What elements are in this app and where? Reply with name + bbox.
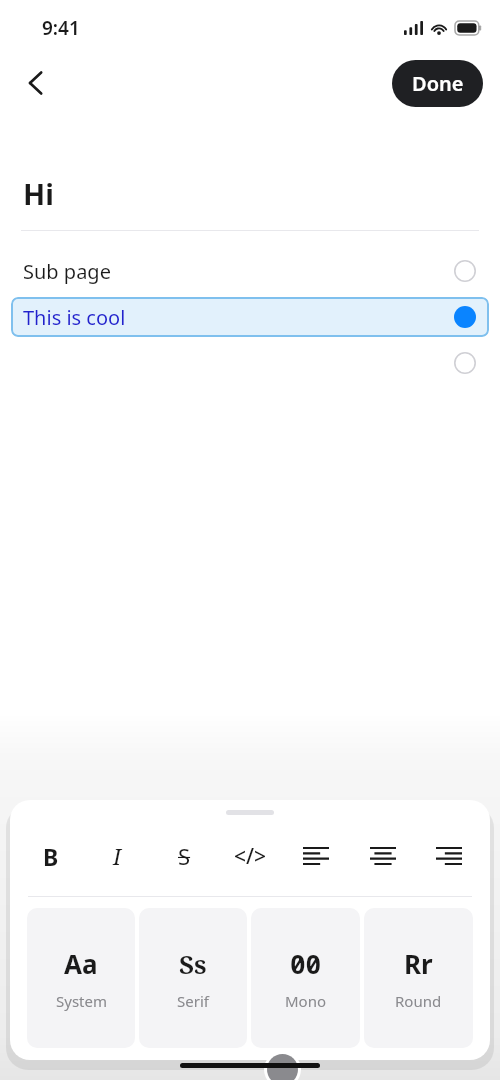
button[interactable]: Bold [32, 837, 70, 875]
button[interactable]: 00 [251, 908, 360, 1048]
button[interactable]: Align center [364, 837, 402, 875]
other: Selected option [453, 305, 477, 329]
staticText: Rr [404, 946, 433, 981]
staticText: B [43, 841, 59, 872]
staticText: I [113, 841, 122, 871]
button[interactable]: Italic [98, 837, 136, 875]
staticText: Done [412, 70, 464, 97]
staticText: </> [234, 842, 267, 871]
button[interactable]: Align right [430, 837, 468, 875]
staticText: This is cool [23, 304, 126, 331]
button[interactable]: Code [231, 837, 269, 875]
other: Option [453, 259, 477, 283]
staticText: S [178, 841, 191, 871]
button[interactable]: Sub page [0, 248, 500, 294]
button[interactable]: This is cool [11, 297, 489, 337]
staticText: 9:41 [42, 15, 80, 41]
staticText: Serif [177, 991, 209, 1011]
staticText: Mono [285, 991, 327, 1011]
staticText: Ss [179, 946, 207, 981]
button[interactable]: Aa [27, 908, 135, 1048]
button[interactable]: Done [392, 60, 483, 107]
button[interactable]: Back [12, 59, 60, 107]
button[interactable]: Rr [364, 908, 473, 1048]
staticText: 00 [290, 946, 322, 981]
staticText: Aa [64, 946, 98, 981]
button[interactable]: Align left [297, 837, 335, 875]
button[interactable]: Ss [139, 908, 247, 1048]
staticText: Round [395, 991, 442, 1011]
staticText: Hi [23, 174, 54, 213]
other: Option [453, 351, 477, 375]
staticText: Sub page [23, 258, 111, 285]
staticText: System [56, 991, 107, 1011]
button[interactable]: Strikethrough [165, 837, 203, 875]
